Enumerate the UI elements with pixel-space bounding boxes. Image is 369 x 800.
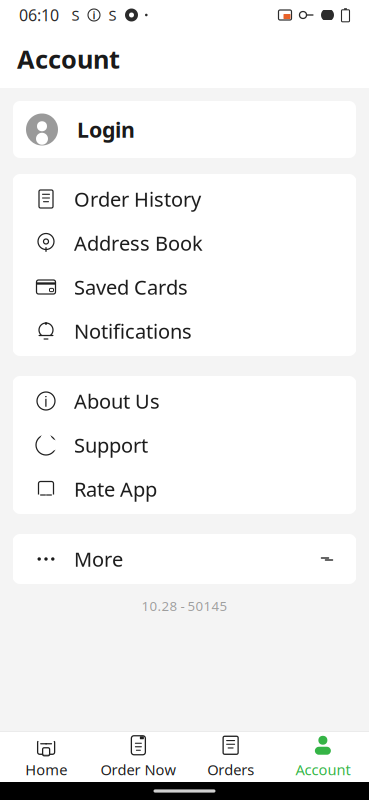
- button[interactable]: Address Book: [13, 221, 356, 265]
- staticText: 10.28 - 50145: [141, 597, 227, 615]
- staticText: Account: [17, 42, 120, 76]
- button[interactable]: Login: [13, 101, 356, 158]
- staticText: S: [71, 5, 79, 25]
- button[interactable]: Order History: [13, 177, 356, 221]
- button[interactable]: Support: [13, 423, 356, 467]
- staticText: Support: [74, 432, 148, 458]
- staticText: Home: [25, 760, 67, 779]
- staticText: Notifications: [74, 318, 192, 344]
- staticText: 06:10: [19, 4, 59, 26]
- button[interactable]: Order Now: [92, 732, 184, 782]
- staticText: Order Now: [100, 760, 176, 779]
- staticText: Address Book: [74, 230, 203, 256]
- button[interactable]: Notifications: [13, 309, 356, 353]
- button[interactable]: More: [13, 537, 356, 581]
- button[interactable]: Saved Cards: [13, 265, 356, 309]
- button[interactable]: Account: [277, 732, 369, 782]
- staticText: Orders: [207, 760, 254, 779]
- button[interactable]: Home: [0, 732, 92, 782]
- staticText: Saved Cards: [74, 274, 188, 300]
- staticText: More: [74, 546, 123, 572]
- staticText: About Us: [74, 388, 160, 414]
- staticText: S: [108, 5, 116, 25]
- button[interactable]: i: [13, 379, 356, 423]
- staticText: Account: [295, 760, 350, 779]
- button[interactable]: Orders: [184, 732, 277, 782]
- staticText: Order History: [74, 186, 201, 212]
- staticText: i: [92, 8, 95, 22]
- staticText: i: [44, 391, 48, 411]
- staticText: Rate App: [74, 476, 157, 502]
- button[interactable]: Rate App: [13, 467, 356, 511]
- staticText: Login: [77, 115, 135, 144]
